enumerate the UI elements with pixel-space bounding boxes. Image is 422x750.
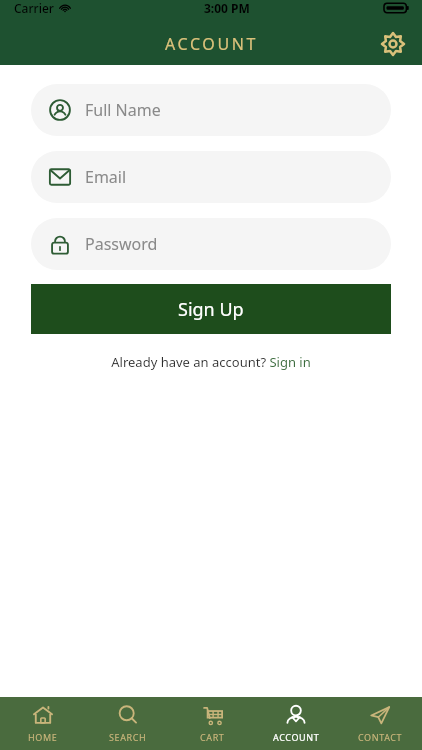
button[interactable]: Full Name xyxy=(31,84,391,136)
button[interactable]: SEARCH xyxy=(85,704,170,743)
button[interactable]: CONTACT xyxy=(338,704,422,743)
staticText: Already have an account? Sign in xyxy=(111,353,311,371)
staticText: Email xyxy=(85,166,127,188)
staticText: ACCOUNT xyxy=(273,731,320,743)
button[interactable]: Password xyxy=(31,218,391,270)
button[interactable]: HOME xyxy=(0,704,85,743)
button[interactable]: Email xyxy=(31,151,391,203)
button[interactable]: CART xyxy=(170,704,254,743)
staticText: CONTACT xyxy=(358,731,403,743)
staticText: HOME xyxy=(28,731,58,743)
button[interactable]: Already have an account? Sign in xyxy=(103,351,319,373)
staticText: ACCOUNT xyxy=(165,33,258,55)
button[interactable]: Sign Up xyxy=(31,284,391,334)
staticText: 3:00 PM xyxy=(204,0,250,16)
staticText: Carrier xyxy=(14,0,54,16)
staticText: Password xyxy=(85,233,158,255)
staticText: Full Name xyxy=(85,99,161,121)
button[interactable]: ACCOUNT xyxy=(254,704,338,743)
button[interactable]: Settings xyxy=(376,27,410,61)
staticText: CART xyxy=(200,731,225,743)
staticText: SEARCH xyxy=(109,731,147,743)
staticText: Sign Up xyxy=(178,297,244,322)
